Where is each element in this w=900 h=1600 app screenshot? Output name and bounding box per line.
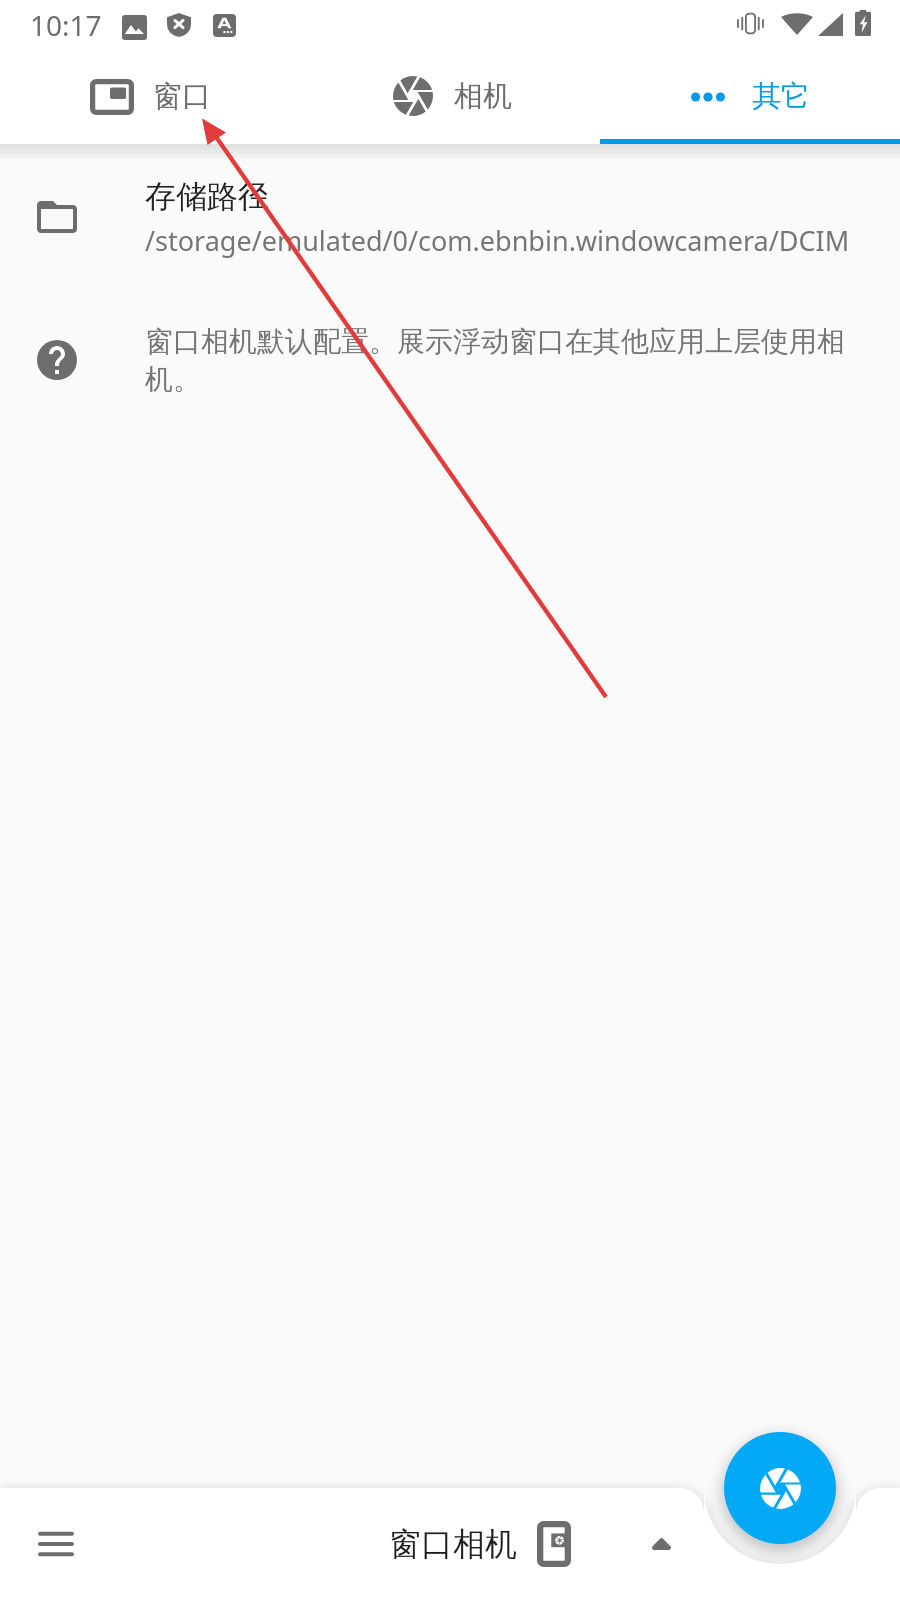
button[interactable]: 其它: [600, 52, 900, 144]
staticText: 窗口相机: [389, 1524, 517, 1564]
button[interactable]: 窗口相机默认配置。展示浮动窗口在其他应用上层使用相机。: [0, 289, 900, 419]
staticText: 存储路径: [145, 177, 269, 216]
button[interactable]: 窗口: [0, 52, 300, 144]
staticText: 相机: [454, 78, 512, 115]
button[interactable]: 相机: [300, 52, 600, 144]
staticText: /storage/emulated/0/com.ebnbin.windowcam…: [145, 222, 850, 259]
staticText: 窗口: [153, 78, 211, 115]
staticText: 其它: [752, 78, 810, 115]
staticText: 窗口相机默认配置。展示浮动窗口在其他应用上层使用相机。: [145, 324, 860, 398]
button[interactable]: Menu: [20, 1508, 92, 1580]
button[interactable]: Capture: [724, 1432, 836, 1544]
button[interactable]: 窗口相机: [369, 1505, 691, 1583]
staticText: 10:17: [30, 6, 102, 44]
button[interactable]: 存储路径: [0, 144, 900, 289]
